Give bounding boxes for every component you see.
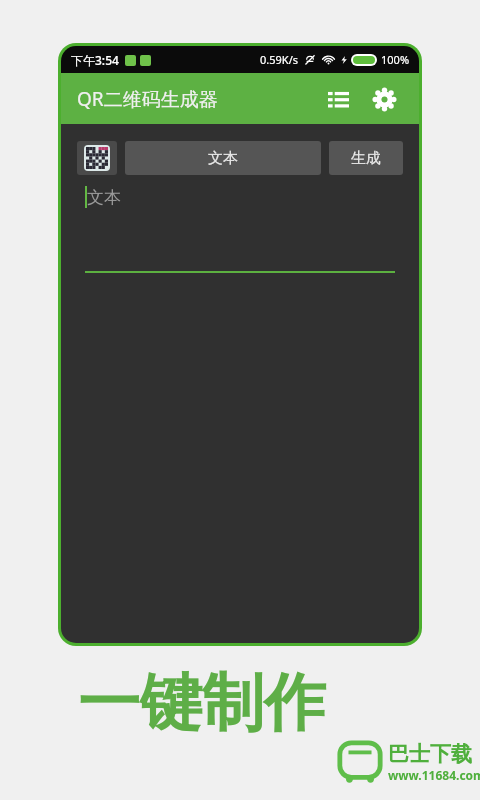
button[interactable]: 生成 [329, 141, 403, 175]
staticText: 下午3:54 [71, 52, 119, 68]
button[interactable]: Scan QR code [77, 141, 117, 175]
staticText: 生成 [351, 149, 381, 168]
button[interactable]: 文本 [125, 141, 321, 175]
staticText: 0.59K/s [260, 52, 298, 67]
button[interactable]: History list [317, 78, 359, 120]
staticText: www.11684.com [388, 767, 480, 783]
staticText: 巴士下载 [388, 741, 472, 767]
staticText: 100% [381, 52, 410, 67]
staticText: 文本 [208, 149, 238, 168]
button[interactable]: Settings [363, 78, 405, 120]
staticText: 文本 [87, 187, 121, 208]
staticText: QR二维码生成器 [77, 86, 218, 112]
staticText: 一键制作 [78, 664, 326, 742]
